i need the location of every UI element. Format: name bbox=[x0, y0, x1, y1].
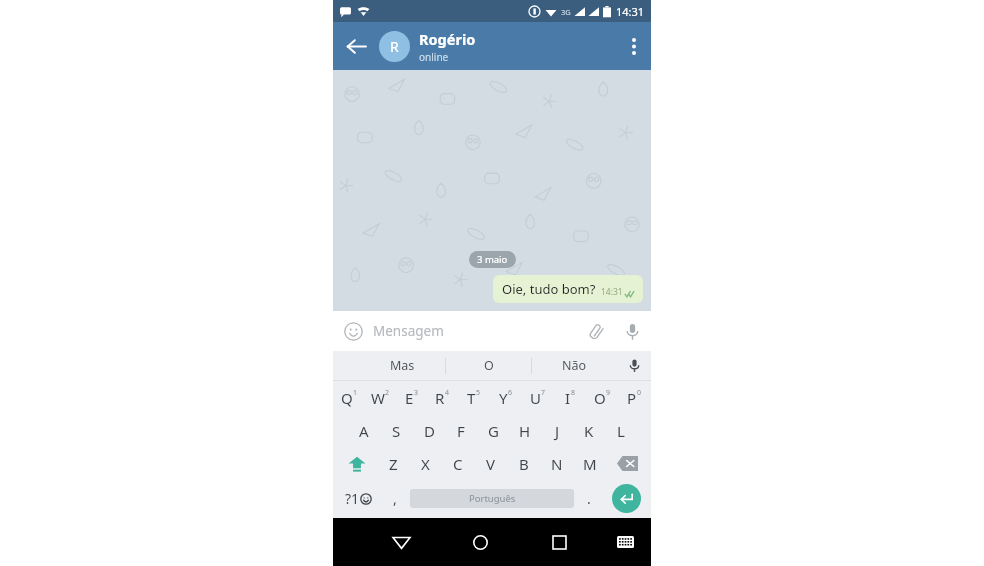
staticText: 9 bbox=[606, 388, 611, 398]
staticText: 4 bbox=[445, 388, 450, 398]
button[interactable]: K bbox=[573, 414, 605, 447]
staticText: W bbox=[371, 388, 385, 408]
button[interactable]: Português bbox=[410, 489, 574, 508]
staticText: B bbox=[519, 454, 529, 474]
button[interactable]: Mas bbox=[359, 351, 445, 380]
button[interactable]: B bbox=[507, 447, 540, 480]
button[interactable]: Q bbox=[334, 381, 365, 414]
button[interactable]: Backspace bbox=[606, 447, 648, 480]
staticText: G bbox=[488, 421, 499, 441]
staticText: Oie, tudo bom? bbox=[502, 280, 596, 298]
staticText: X bbox=[421, 454, 430, 474]
button[interactable]: Home bbox=[441, 518, 520, 566]
staticText: S bbox=[392, 421, 401, 441]
button[interactable]: I bbox=[554, 381, 586, 414]
staticText: 14:31 bbox=[601, 286, 623, 298]
button[interactable]: O bbox=[586, 381, 618, 414]
staticText: H bbox=[519, 421, 531, 441]
staticText: N bbox=[551, 454, 563, 474]
staticText: E bbox=[405, 388, 414, 408]
button[interactable]: A bbox=[347, 414, 380, 447]
button[interactable]: C bbox=[441, 447, 474, 480]
staticText: Mensagem bbox=[373, 322, 444, 340]
staticText: 3G bbox=[561, 7, 571, 17]
staticText: Z bbox=[389, 454, 398, 474]
staticText: K bbox=[584, 421, 594, 441]
staticText: 5 bbox=[476, 388, 481, 398]
button[interactable]: R bbox=[427, 381, 458, 414]
button[interactable]: R bbox=[379, 22, 617, 70]
button[interactable]: O bbox=[446, 351, 531, 380]
button[interactable]: P bbox=[618, 381, 650, 414]
staticText: 2 bbox=[385, 388, 390, 398]
button[interactable]: Back bbox=[361, 518, 441, 566]
staticText: F bbox=[457, 421, 465, 441]
button[interactable]: D bbox=[413, 414, 445, 447]
staticText: online bbox=[419, 50, 449, 64]
button[interactable]: Attach bbox=[579, 311, 613, 351]
staticText: 1 bbox=[353, 388, 358, 398]
button[interactable]: N bbox=[540, 447, 573, 480]
button[interactable]: Mensagem bbox=[373, 311, 579, 351]
button[interactable]: X bbox=[409, 447, 441, 480]
staticText: Y bbox=[499, 388, 508, 408]
staticText: V bbox=[486, 454, 496, 474]
button[interactable]: , bbox=[380, 480, 410, 516]
button[interactable]: M bbox=[573, 447, 606, 480]
button[interactable]: Y bbox=[490, 381, 522, 414]
staticText: T bbox=[467, 388, 476, 408]
button[interactable]: T bbox=[458, 381, 490, 414]
staticText: 3 maio bbox=[477, 253, 508, 266]
button[interactable]: J bbox=[541, 414, 573, 447]
staticText: 7 bbox=[541, 388, 546, 398]
button[interactable]: E bbox=[396, 381, 427, 414]
button[interactable]: Z bbox=[377, 447, 409, 480]
staticText: R bbox=[390, 37, 399, 56]
staticText: M bbox=[583, 454, 597, 474]
staticText: U bbox=[530, 388, 541, 408]
button[interactable]: W bbox=[365, 381, 396, 414]
button[interactable]: Oie, tudo bom? bbox=[493, 275, 643, 303]
button[interactable]: U bbox=[522, 381, 554, 414]
staticText: A bbox=[359, 421, 369, 441]
staticText: Rogério bbox=[419, 29, 476, 49]
staticText: 6 bbox=[508, 388, 513, 398]
staticText: Não bbox=[562, 357, 587, 374]
button[interactable]: Emoji bbox=[333, 311, 373, 351]
button[interactable]: Recent apps bbox=[520, 518, 599, 566]
button[interactable]: Voice input bbox=[617, 351, 651, 380]
staticText: J bbox=[555, 421, 560, 441]
staticText: L bbox=[617, 421, 625, 441]
button[interactable]: G bbox=[477, 414, 509, 447]
staticText: O bbox=[594, 388, 606, 408]
button[interactable]: Voice message bbox=[613, 311, 651, 351]
staticText: P bbox=[627, 388, 637, 408]
staticText: Português bbox=[469, 492, 516, 505]
staticText: R bbox=[435, 388, 445, 408]
staticText: C bbox=[453, 454, 463, 474]
staticText: Mas bbox=[390, 357, 415, 374]
staticText: O bbox=[484, 357, 494, 374]
button[interactable]: Enter bbox=[612, 484, 641, 513]
button[interactable]: More options bbox=[617, 22, 651, 70]
button[interactable]: Não bbox=[532, 351, 617, 380]
staticText: ?1 bbox=[345, 489, 360, 508]
button[interactable]: L bbox=[605, 414, 637, 447]
button[interactable]: S bbox=[380, 414, 413, 447]
button[interactable]: F bbox=[445, 414, 477, 447]
button[interactable]: ?1 bbox=[336, 480, 380, 516]
button[interactable]: V bbox=[474, 447, 507, 480]
button[interactable]: Shift bbox=[336, 447, 377, 480]
staticText: 0 bbox=[637, 388, 642, 398]
staticText: 8 bbox=[571, 388, 576, 398]
staticText: Q bbox=[341, 388, 353, 408]
staticText: 3 bbox=[414, 388, 419, 398]
staticText: I bbox=[565, 388, 571, 408]
staticText: , bbox=[393, 489, 397, 508]
button[interactable]: . bbox=[574, 480, 604, 516]
button[interactable]: Back bbox=[333, 22, 379, 70]
button[interactable]: H bbox=[509, 414, 541, 447]
staticText: . bbox=[587, 489, 591, 508]
staticText: D bbox=[424, 421, 435, 441]
button[interactable]: Switch keyboard bbox=[599, 518, 651, 566]
